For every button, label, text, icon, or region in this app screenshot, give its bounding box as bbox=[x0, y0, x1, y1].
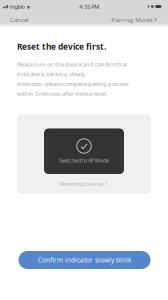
staticText: Please turn on the device and confirm th… bbox=[17, 60, 129, 97]
staticText: Resetting Devices 1 bbox=[60, 180, 108, 187]
button[interactable]: Pairing Mode bbox=[105, 13, 168, 26]
staticText: Confirm indicator slowly blink bbox=[38, 256, 131, 264]
staticText: Switched to AP Mode bbox=[59, 157, 109, 164]
staticText: Cancel bbox=[10, 15, 29, 24]
button[interactable]: Cancel bbox=[0, 13, 35, 26]
staticText: mgbio bbox=[10, 3, 25, 10]
staticText: Reset the device first. bbox=[17, 41, 106, 52]
staticText: 4:55 PM bbox=[79, 3, 99, 10]
staticText: Pairing Mode bbox=[111, 15, 152, 24]
button[interactable]: Confirm indicator slowly blink bbox=[18, 251, 150, 269]
